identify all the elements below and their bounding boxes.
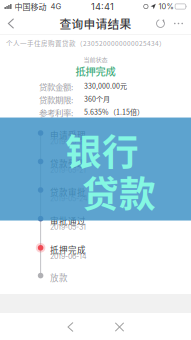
staticText: 4G bbox=[50, 2, 61, 11]
staticText: 2019-06-14 bbox=[50, 252, 87, 261]
button[interactable]: 刷新 bbox=[152, 13, 169, 34]
staticText: 贷款受理 bbox=[50, 157, 86, 170]
staticText: 申请受理 bbox=[50, 129, 86, 141]
staticText: 查询申请结果 bbox=[59, 15, 131, 32]
staticText: 个人一手住房购置贷款（2305200000000025434） bbox=[6, 38, 166, 48]
staticText: 330,000.00元 bbox=[84, 80, 127, 91]
staticText: 参考利率: bbox=[39, 106, 73, 119]
button[interactable]: 更多 bbox=[169, 13, 188, 34]
staticText: 2019-05-24 bbox=[50, 194, 88, 203]
staticText: 贷款 bbox=[82, 165, 156, 218]
staticText: 放款 bbox=[50, 271, 68, 284]
staticText: 14:41 bbox=[91, 1, 114, 12]
staticText: 2019-05-20 bbox=[50, 137, 87, 146]
staticText: 360个月 bbox=[84, 93, 110, 104]
button[interactable]: 后退 bbox=[53, 315, 87, 339]
staticText: 5.635%（1.15倍） bbox=[84, 106, 144, 117]
staticText: 当前状态 bbox=[83, 55, 107, 64]
staticText: 贷款金额: bbox=[39, 80, 73, 93]
button[interactable]: 返回 bbox=[0, 13, 22, 34]
staticText: 贷款审批 bbox=[50, 186, 86, 198]
staticText: 审批通过 bbox=[50, 214, 86, 227]
staticText: 10% bbox=[158, 2, 173, 11]
staticText: 银行 bbox=[65, 123, 139, 176]
button[interactable]: 关闭 bbox=[102, 315, 136, 339]
staticText: 2019-05-21 bbox=[50, 166, 86, 174]
staticText: 贷款期限: bbox=[39, 93, 73, 106]
staticText: 中国移动 bbox=[14, 1, 46, 12]
staticText: 抵押完成 bbox=[50, 244, 86, 256]
staticText: 抵押完成 bbox=[75, 63, 115, 78]
staticText: 2019-05-31 bbox=[50, 223, 86, 231]
